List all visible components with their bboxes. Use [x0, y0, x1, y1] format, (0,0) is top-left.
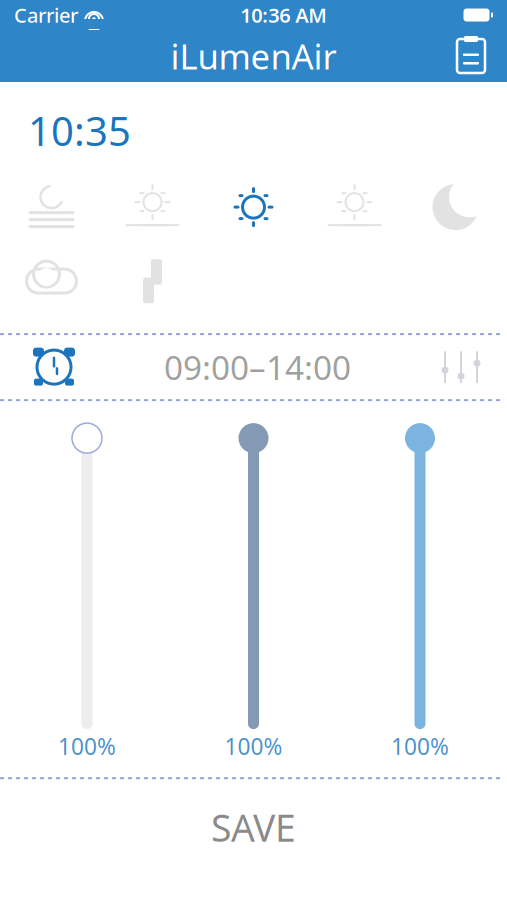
button[interactable]: Cloudy scene	[1, 245, 102, 317]
staticText: 10:35	[28, 104, 131, 157]
staticText: iLumenAir	[170, 33, 336, 79]
button[interactable]: Storm scene	[102, 245, 203, 317]
button[interactable]: Sunrise scene	[102, 169, 203, 245]
staticText: Carrier	[14, 2, 78, 28]
button[interactable]: Schedules	[453, 36, 507, 76]
button[interactable]: 09:00–14:00	[0, 335, 507, 399]
button[interactable]: Sunset scene	[304, 169, 405, 245]
button[interactable]: Moon scene	[405, 169, 506, 245]
staticText: 100%	[58, 731, 116, 761]
button[interactable]: Night fog scene	[1, 169, 102, 245]
button[interactable]: Daylight scene, selected	[203, 169, 304, 245]
staticText: 100%	[224, 731, 282, 761]
button[interactable]: 100%	[58, 415, 116, 761]
button[interactable]: SAVE	[0, 779, 507, 875]
staticText: 100%	[391, 731, 449, 761]
staticText: 10:36 AM	[240, 2, 327, 28]
button[interactable]: 100%	[391, 415, 449, 761]
staticText: 09:00–14:00	[164, 345, 351, 389]
staticText: SAVE	[211, 802, 296, 852]
button[interactable]: 100%	[224, 415, 282, 761]
